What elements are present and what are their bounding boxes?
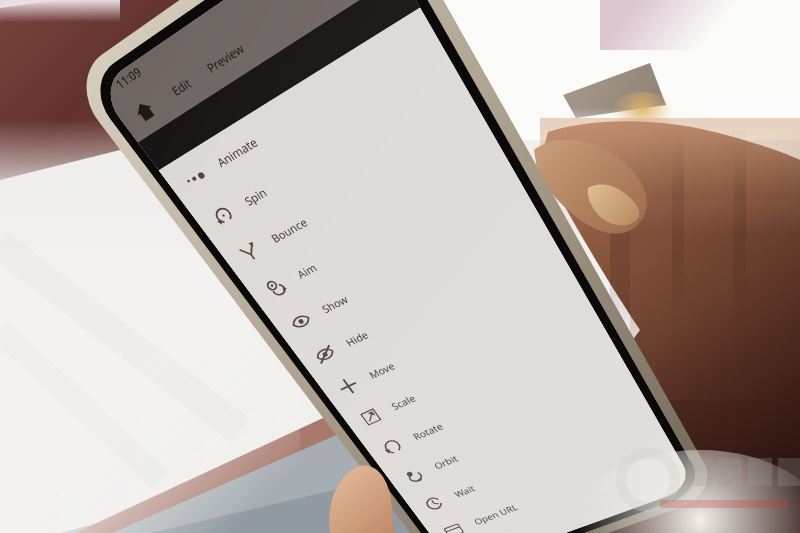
staticText: Wait <box>452 483 478 500</box>
button[interactable]: Edit <box>155 61 207 112</box>
button[interactable]: Orbit <box>382 367 646 498</box>
button[interactable]: Wait <box>403 400 664 525</box>
button[interactable]: Bounce <box>215 100 498 282</box>
staticText: Animate <box>213 134 261 171</box>
button[interactable]: Spin <box>188 55 473 246</box>
staticText: Orbit <box>431 453 460 472</box>
staticText: Preview <box>203 39 247 76</box>
button[interactable]: Animate <box>159 9 448 210</box>
button[interactable]: Preview <box>186 23 264 92</box>
staticText: Show <box>319 292 351 316</box>
staticText: 11:09 <box>112 63 145 92</box>
staticText: Bounce <box>268 214 311 246</box>
staticText: Hide <box>343 328 371 349</box>
staticText: Rotate <box>410 420 446 443</box>
staticText: Edit <box>168 75 194 99</box>
staticText: Spin <box>241 184 270 209</box>
button[interactable]: Rotate <box>361 333 627 470</box>
staticText: Move <box>366 359 398 382</box>
staticText: Aim <box>294 260 320 282</box>
button[interactable]: Move <box>315 261 587 411</box>
button[interactable]: Hide <box>292 223 566 381</box>
button[interactable]: Aim <box>242 143 522 316</box>
button[interactable]: Home <box>113 82 176 139</box>
button[interactable]: Show <box>267 184 544 349</box>
button[interactable]: Scale <box>338 298 607 441</box>
staticText: Open URL <box>471 501 521 527</box>
staticText: Scale <box>389 392 418 413</box>
button[interactable]: Open URL <box>423 432 682 533</box>
